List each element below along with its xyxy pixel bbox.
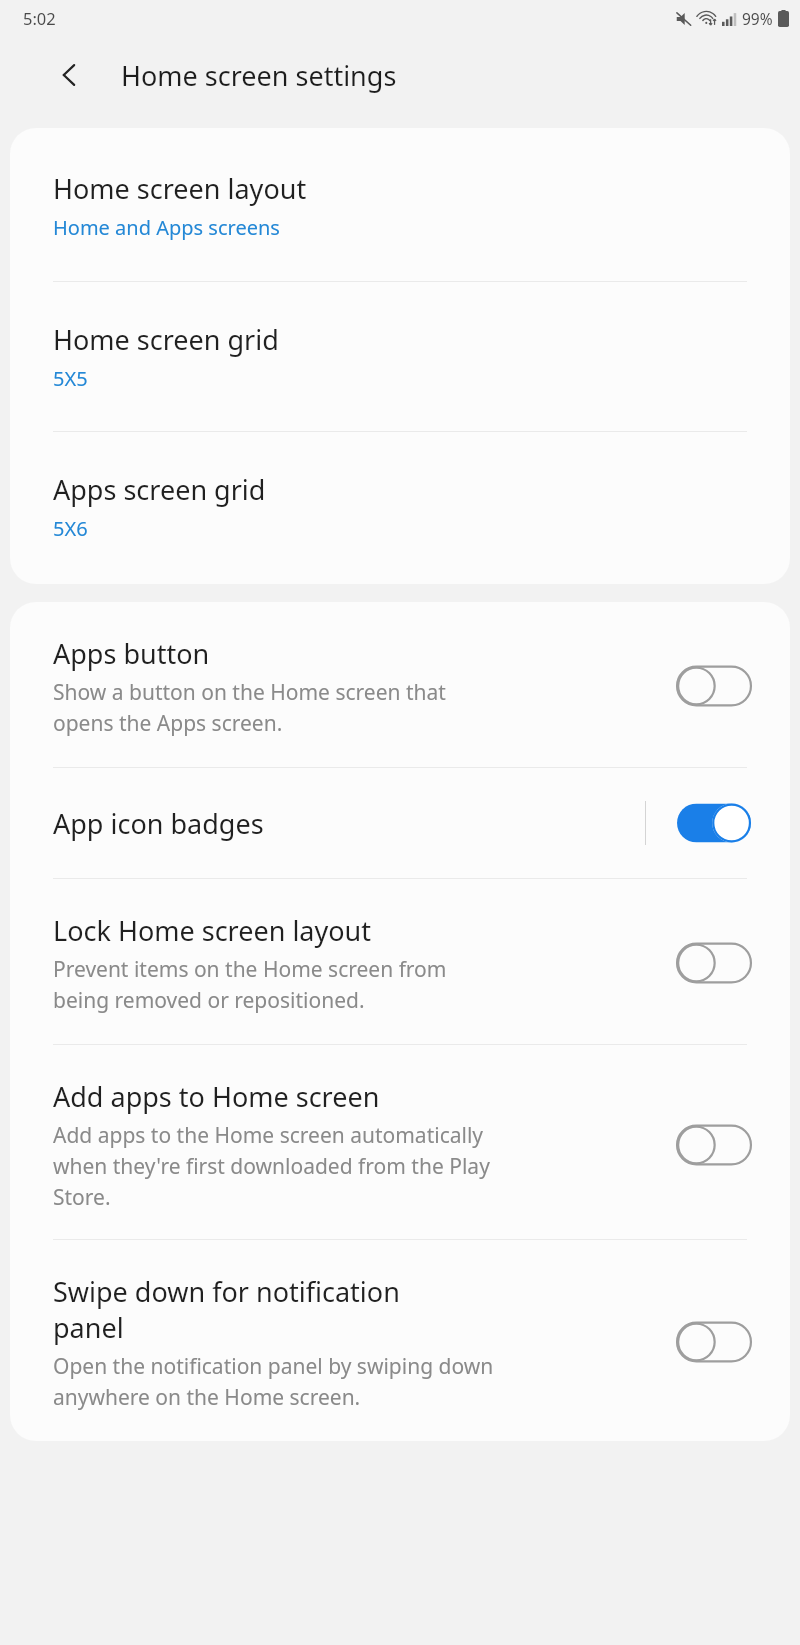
staticText: 5:02 bbox=[23, 7, 56, 29]
button[interactable]: Home screen grid bbox=[10, 282, 790, 431]
staticText: Home screen grid bbox=[53, 321, 279, 358]
staticText: Home screen layout bbox=[53, 170, 307, 207]
button[interactable]: Apps screen grid bbox=[10, 432, 790, 584]
button[interactable]: Off bbox=[672, 1123, 756, 1167]
button[interactable]: Back bbox=[44, 49, 96, 101]
button[interactable]: Apps button bbox=[10, 602, 790, 767]
staticText: Apps screen grid bbox=[53, 471, 266, 508]
button[interactable]: App icon badges bbox=[10, 768, 790, 878]
button[interactable]: Off bbox=[672, 664, 756, 708]
button[interactable]: Lock Home screen layout bbox=[10, 879, 790, 1044]
button[interactable]: Add apps to Home screen bbox=[10, 1045, 790, 1239]
staticText: Apps button bbox=[53, 635, 210, 672]
staticText: 5X5 bbox=[53, 365, 88, 392]
staticText: 99% bbox=[742, 8, 773, 29]
staticText: Show a button on the Home screen that op… bbox=[53, 678, 446, 737]
button[interactable]: Off bbox=[672, 941, 756, 985]
staticText: Home screen settings bbox=[121, 57, 397, 94]
staticText: Home and Apps screens bbox=[53, 214, 280, 241]
staticText: 5X6 bbox=[53, 515, 88, 542]
button[interactable]: Off bbox=[672, 1320, 756, 1364]
button[interactable]: On bbox=[672, 801, 756, 845]
staticText: Prevent items on the Home screen from be… bbox=[53, 955, 447, 1014]
staticText: Add apps to Home screen bbox=[53, 1078, 380, 1115]
staticText: Swipe down for notification panel bbox=[53, 1273, 400, 1346]
button[interactable]: Home screen layout bbox=[10, 128, 790, 281]
staticText: Add apps to the Home screen automaticall… bbox=[53, 1121, 490, 1211]
staticText: Open the notification panel by swiping d… bbox=[53, 1352, 494, 1411]
staticText: Lock Home screen layout bbox=[53, 912, 372, 949]
button[interactable]: Swipe down for notification panel bbox=[10, 1240, 790, 1441]
staticText: App icon badges bbox=[53, 805, 264, 842]
